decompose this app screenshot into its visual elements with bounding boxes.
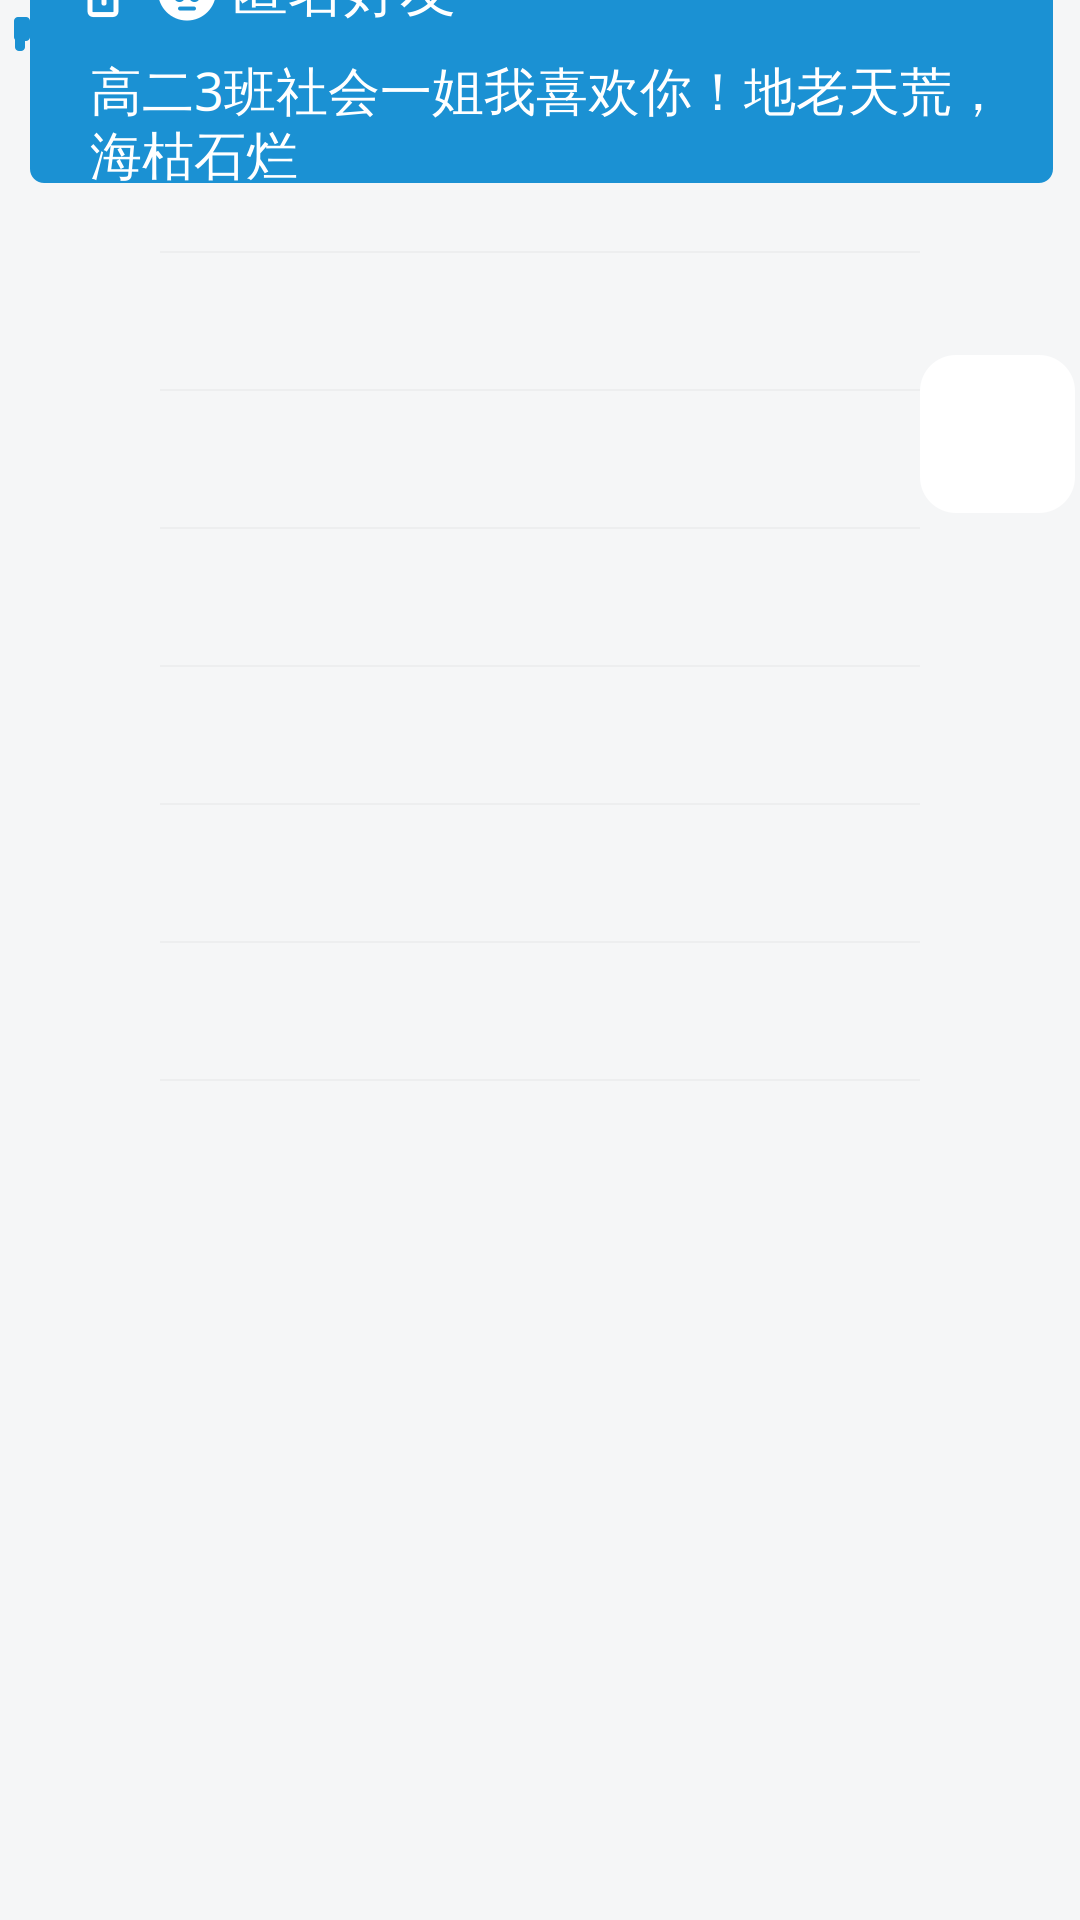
staticText: 高二3班社会一姐我喜欢你！地老天荒，海枯石烂 — [90, 56, 1004, 189]
staticText: 匿名好友 — [232, 0, 456, 26]
